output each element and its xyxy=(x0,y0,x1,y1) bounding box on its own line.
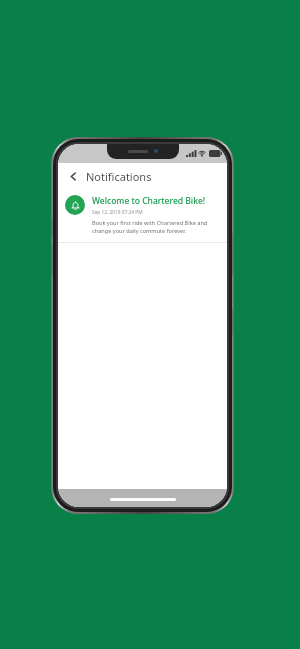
staticText: Sep 12, 2019 07:24 PM xyxy=(92,209,143,216)
staticText: Welcome to Chartered Bike! xyxy=(92,195,206,207)
button[interactable]: Welcome to Chartered Bike! xyxy=(58,189,227,242)
staticText: Book your first ride with Chartered Bike… xyxy=(92,219,219,235)
button[interactable]: Back xyxy=(65,168,81,184)
staticText: Notifications xyxy=(86,169,152,184)
